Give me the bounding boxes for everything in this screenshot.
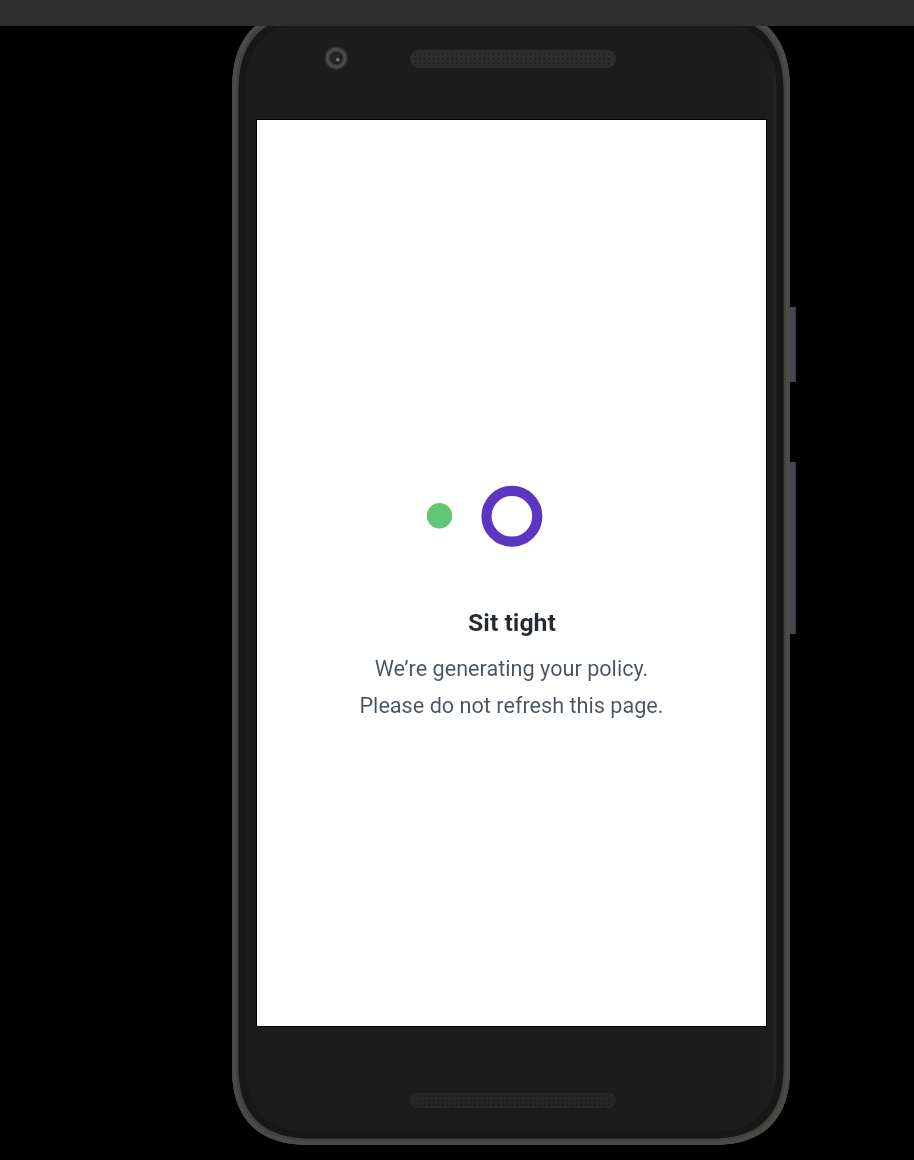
staticText: We’re generating your policy. Please do … [359,656,664,718]
other: Loading, generating your policy [257,120,766,1026]
button[interactable]: Volume [786,462,796,634]
staticText: Sit tight [468,608,556,637]
button[interactable]: Power [786,307,796,382]
